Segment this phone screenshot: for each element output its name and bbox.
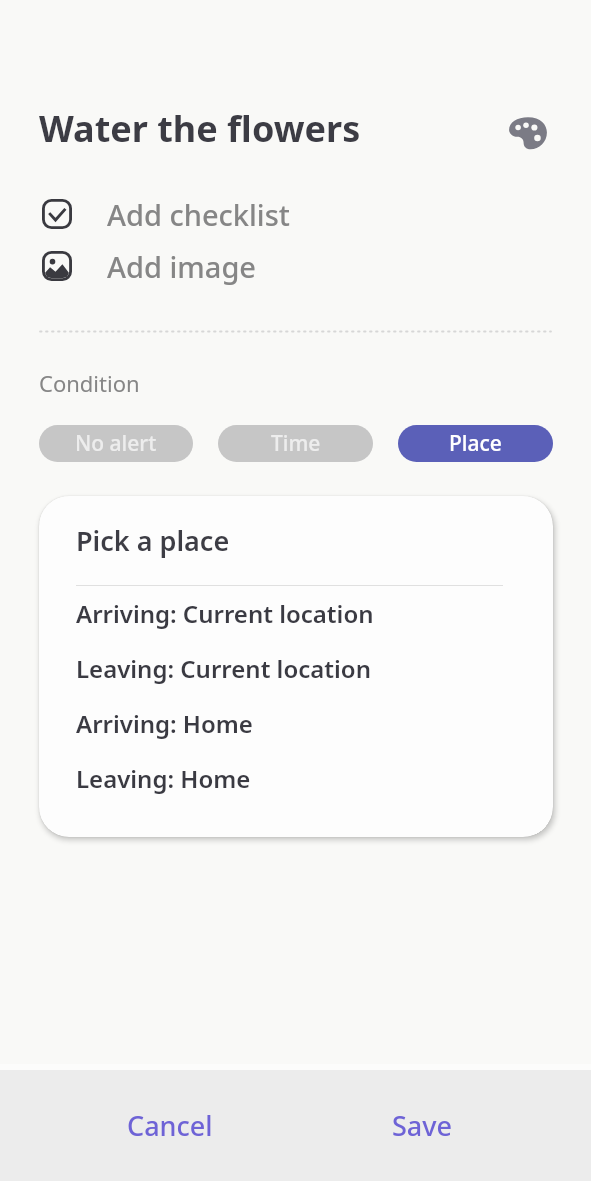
staticText: Save [392, 1107, 453, 1144]
staticText: No alert [75, 429, 157, 458]
button[interactable]: Arriving: Current location [39, 586, 553, 641]
button[interactable]: Time [218, 425, 373, 462]
staticText: Leaving: Home [76, 762, 251, 795]
button[interactable]: Change colour [504, 109, 552, 157]
staticText: Add checklist [107, 195, 290, 234]
staticText: Place [449, 429, 502, 458]
button[interactable]: No alert [39, 425, 193, 462]
staticText: Cancel [127, 1107, 213, 1144]
staticText: Time [271, 429, 321, 458]
button[interactable]: Save [296, 1070, 549, 1181]
staticText: Arriving: Home [76, 707, 253, 740]
button[interactable]: Add image [0, 240, 591, 292]
staticText: Water the flowers [39, 104, 361, 153]
staticText: Pick a place [76, 522, 230, 559]
staticText: Condition [39, 368, 140, 398]
staticText: Leaving: Current location [76, 652, 371, 685]
button[interactable]: Place [398, 425, 553, 462]
button[interactable]: Leaving: Home [39, 751, 553, 806]
staticText: Add image [107, 247, 257, 286]
button[interactable]: Leaving: Current location [39, 641, 553, 696]
button[interactable]: Add checklist [0, 188, 591, 240]
button[interactable]: Arriving: Home [39, 696, 553, 751]
button[interactable]: Cancel [44, 1070, 296, 1181]
staticText: Arriving: Current location [76, 597, 374, 630]
